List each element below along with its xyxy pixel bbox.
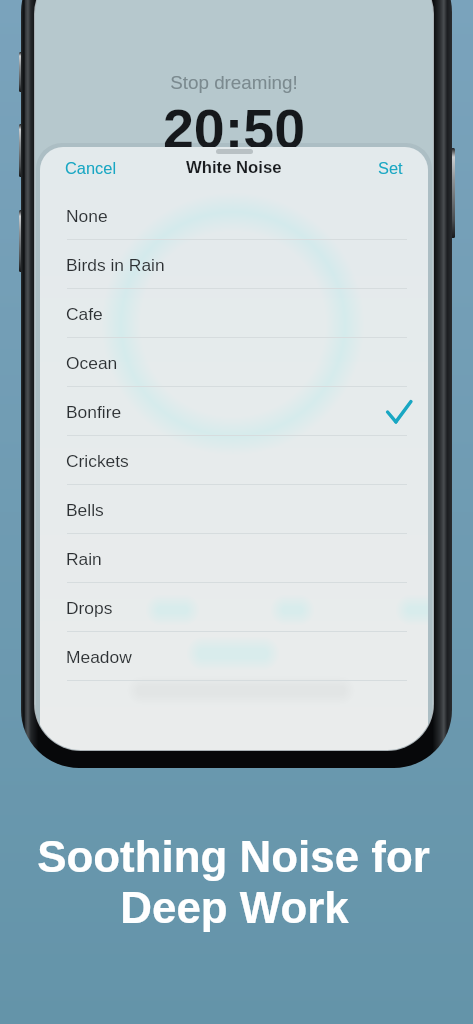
staticText: Birds in Rain xyxy=(66,255,165,274)
button[interactable]: Cafe xyxy=(40,289,428,338)
staticText: Rain xyxy=(66,549,102,568)
staticText: White Noise xyxy=(186,158,282,177)
staticText: Crickets xyxy=(66,451,129,470)
button[interactable]: Crickets xyxy=(40,436,428,485)
button[interactable]: Cancel xyxy=(40,152,131,184)
staticText: 20:50 xyxy=(35,98,433,160)
staticText: Bells xyxy=(66,500,104,519)
staticText: Bonfire xyxy=(66,402,122,421)
button[interactable]: Bonfire xyxy=(40,387,428,436)
button[interactable]: Meadow xyxy=(40,632,428,681)
staticText: Meadow xyxy=(66,647,132,666)
staticText: None xyxy=(66,206,108,225)
button[interactable]: Bells xyxy=(40,485,428,534)
staticText: Set xyxy=(378,159,403,177)
staticText: Cafe xyxy=(66,304,103,323)
staticText: Deep Work xyxy=(0,883,471,932)
staticText: Cancel xyxy=(65,159,117,177)
button[interactable]: Set xyxy=(364,152,428,184)
staticText: Soothing Noise for xyxy=(0,832,470,881)
staticText: Ocean xyxy=(66,353,118,372)
staticText: Drops xyxy=(66,598,113,617)
button[interactable]: Ocean xyxy=(40,338,428,387)
staticText: Stop dreaming! xyxy=(35,72,433,93)
button[interactable]: Rain xyxy=(40,534,428,583)
button[interactable]: Birds in Rain xyxy=(40,240,428,289)
button[interactable]: Drops xyxy=(40,583,428,632)
button[interactable]: None xyxy=(40,191,428,240)
other: Selected xyxy=(386,399,412,425)
